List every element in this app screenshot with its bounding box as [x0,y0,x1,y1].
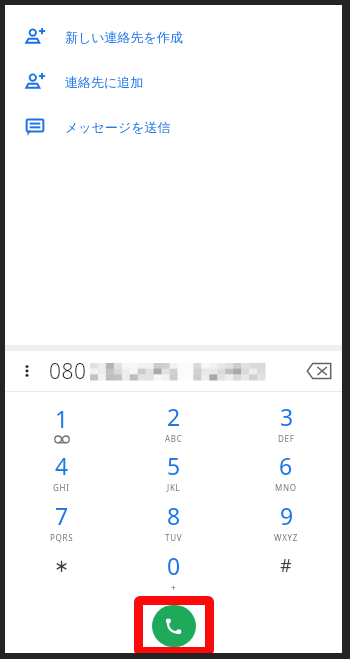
staticText: 連絡先に追加 [65,74,144,90]
staticText: ∗ [54,555,70,576]
staticText: JKL [167,482,181,493]
button[interactable]: # [230,546,342,596]
staticText: 新しい連絡先を作成 [65,29,183,45]
staticText: 0 [167,550,181,581]
staticText: 4 [55,450,69,481]
button[interactable]: Call [152,605,196,647]
staticText: 6 [279,450,293,481]
button[interactable]: ∗ [5,546,118,596]
staticText: TUV [165,532,183,543]
button[interactable]: 1 [5,398,118,447]
staticText: メッセージを送信 [65,119,171,135]
staticText: ABC [165,433,183,444]
staticText: 5 [167,450,181,481]
button[interactable]: 連絡先に追加 [5,62,342,101]
button[interactable]: Backspace [296,351,342,391]
staticText: 9 [280,500,294,531]
button[interactable]: 6 [230,447,342,496]
button[interactable]: 4 [5,447,118,496]
staticText: GHI [53,482,70,493]
staticText: # [280,553,292,578]
staticText: + [171,582,177,593]
button[interactable]: 新しい連絡先を作成 [5,17,342,56]
staticText: 080 [49,357,87,386]
staticText: MNO [275,482,297,493]
staticText: 1 [55,403,69,434]
staticText: 8 [167,500,181,531]
staticText: PQRS [50,532,74,543]
button[interactable]: 0 [118,546,230,596]
button[interactable]: 3 [230,398,342,447]
staticText: DEF [278,433,295,444]
button[interactable]: More options [5,351,49,391]
button[interactable]: 8 [118,496,230,546]
staticText: 7 [55,500,69,531]
button[interactable]: 2 [118,398,230,447]
button[interactable]: 7 [5,496,118,546]
button[interactable]: 5 [118,447,230,496]
staticText: 2 [167,401,181,432]
button[interactable]: メッセージを送信 [5,107,342,146]
staticText: 3 [280,401,294,432]
staticText: WXYZ [274,532,299,543]
button[interactable]: 9 [230,496,342,546]
